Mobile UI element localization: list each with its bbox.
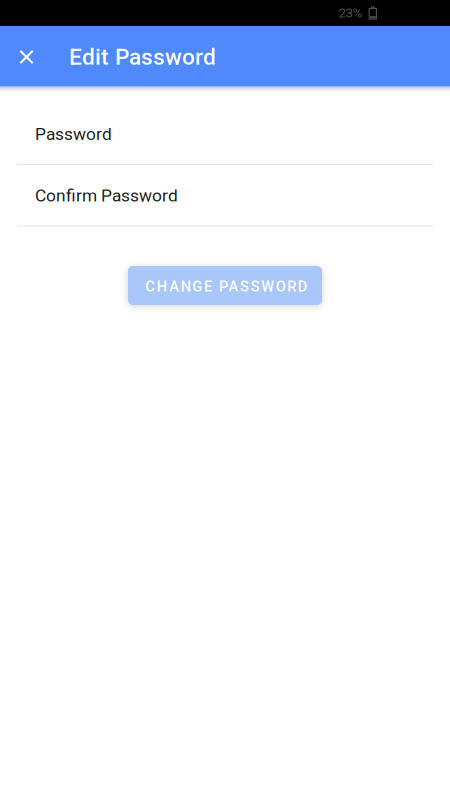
staticText: CHANGE PASSWORD	[145, 278, 308, 295]
button[interactable]: Password	[0, 124, 450, 165]
staticText: Password	[35, 124, 112, 144]
staticText: Edit Password	[69, 44, 216, 70]
staticText: 23%	[339, 5, 363, 21]
staticText: Confirm Password	[35, 185, 178, 206]
button[interactable]: Close	[0, 26, 53, 86]
button[interactable]: Confirm Password	[0, 185, 450, 226]
button[interactable]: CHANGE PASSWORD	[128, 266, 322, 305]
